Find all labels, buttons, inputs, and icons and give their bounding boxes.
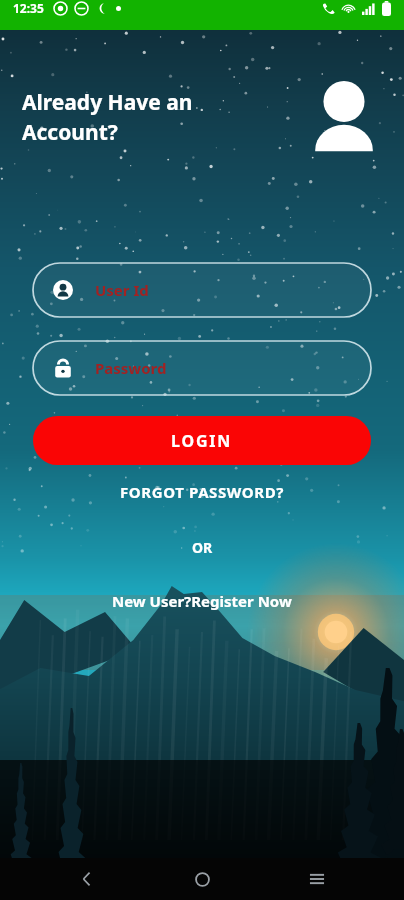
- staticText: LOGIN: [171, 430, 233, 452]
- staticText: FORGOT PASSWORD?: [120, 482, 285, 502]
- button[interactable]: Home: [174, 858, 230, 900]
- button[interactable]: Password: [33, 341, 371, 395]
- staticText: 12:35: [13, 0, 44, 16]
- button[interactable]: LOGIN: [33, 416, 371, 465]
- button[interactable]: User Id: [33, 263, 371, 317]
- other: Account: [308, 78, 380, 156]
- staticText: User Id: [95, 280, 149, 300]
- staticText: OR: [192, 538, 213, 557]
- button[interactable]: Recent apps: [289, 858, 345, 900]
- staticText: Already Have an Account?: [22, 88, 193, 146]
- staticText: Password: [95, 358, 167, 378]
- button[interactable]: FORGOT PASSWORD?: [108, 478, 297, 506]
- staticText: New User?Register Now: [112, 591, 292, 611]
- button[interactable]: Back: [59, 858, 115, 900]
- button[interactable]: New User?Register Now: [100, 587, 304, 615]
